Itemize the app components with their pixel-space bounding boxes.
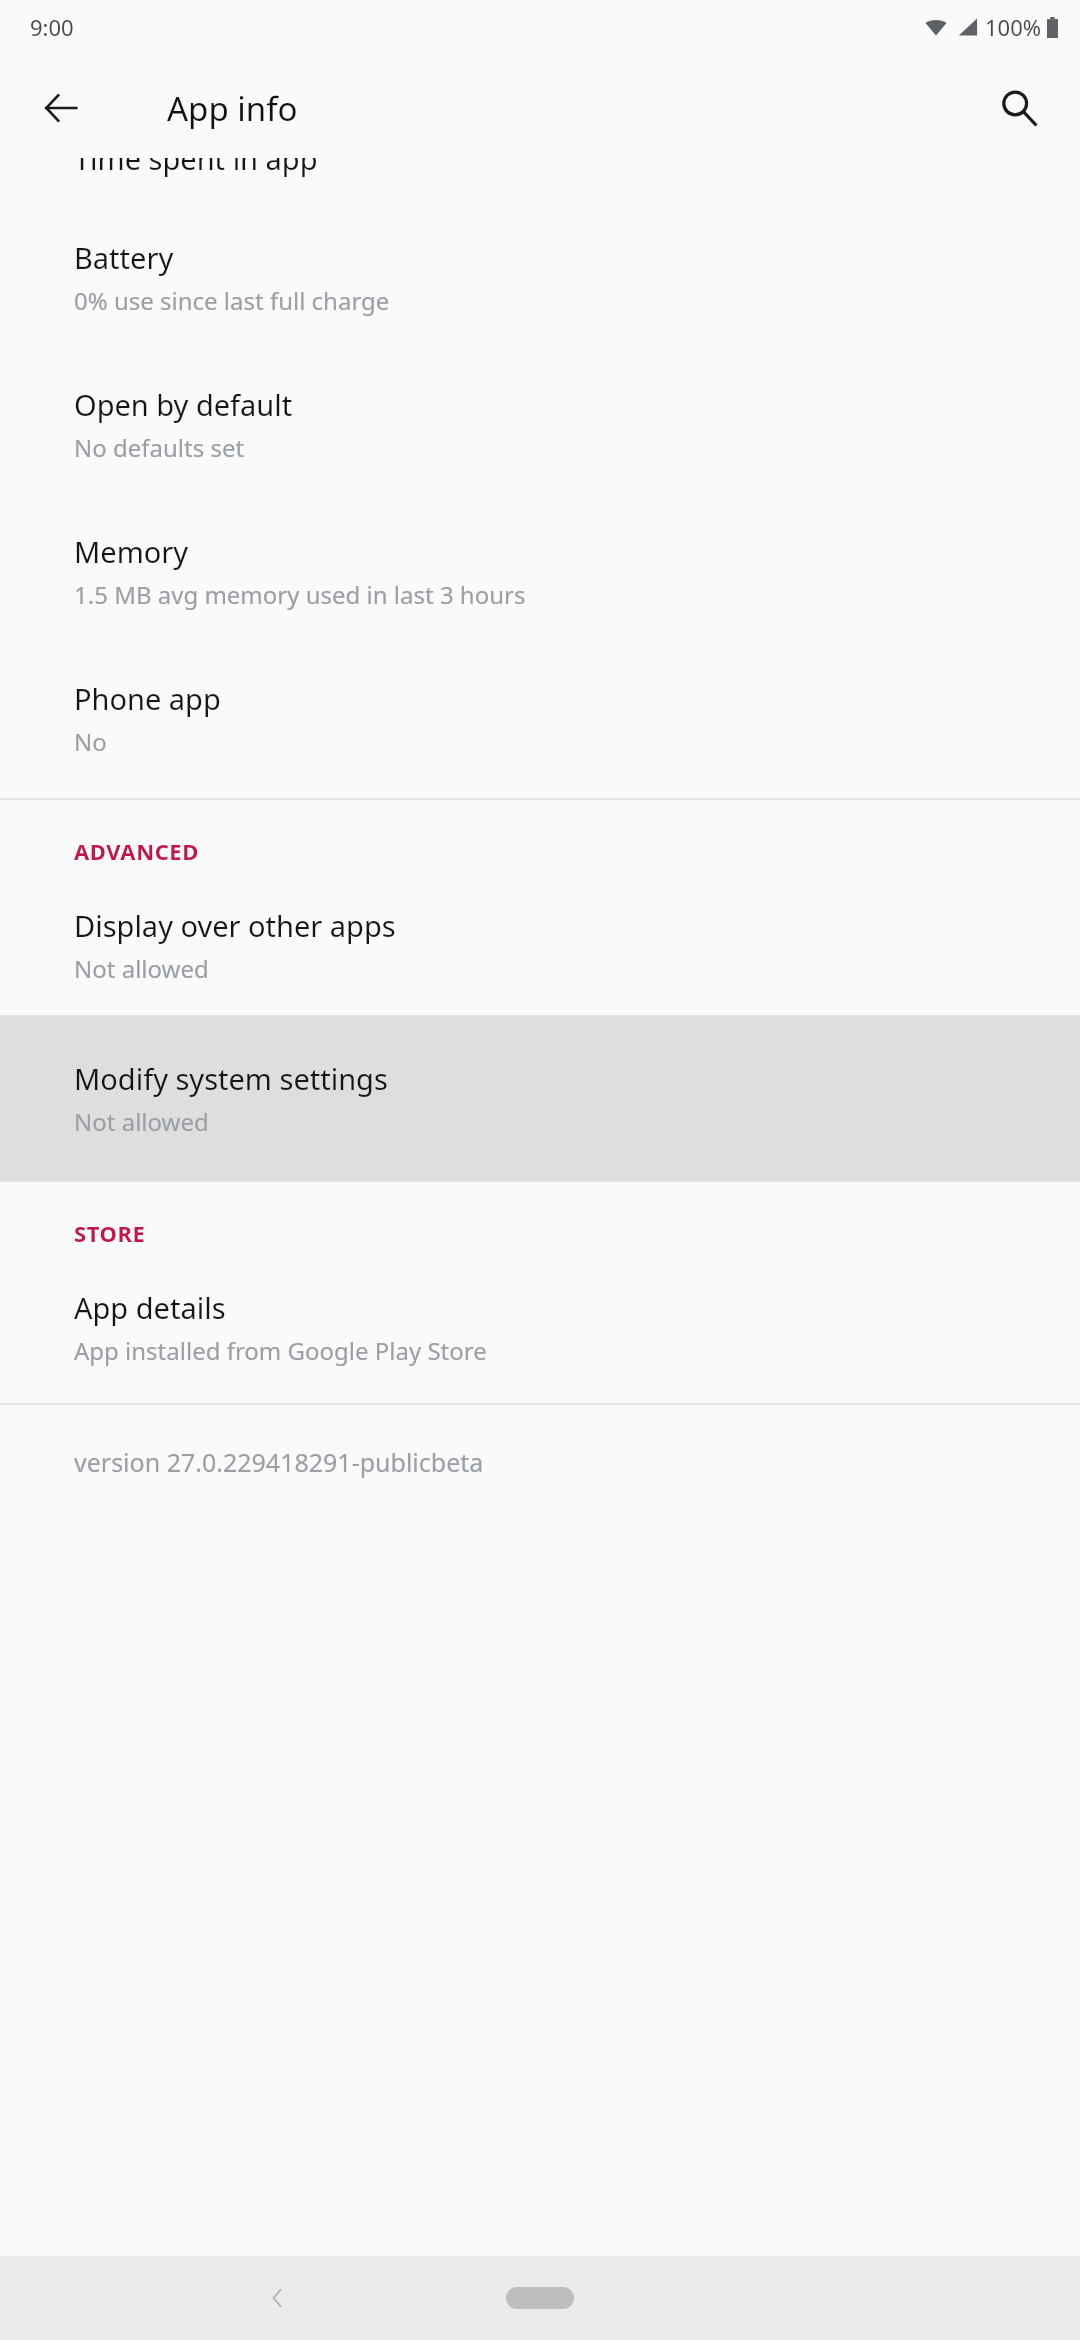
staticText: version 27.0.229418291-publicbeta <box>74 1445 484 1479</box>
staticText: App details <box>74 1288 226 1327</box>
staticText: Phone app <box>74 679 221 718</box>
button[interactable]: Back <box>25 72 97 144</box>
button[interactable]: Search <box>983 72 1055 144</box>
staticText: Display over other apps <box>74 906 396 945</box>
button[interactable]: Home <box>506 2287 574 2309</box>
button[interactable]: App details <box>0 1262 1080 1403</box>
staticText: STORE <box>74 1218 146 1248</box>
button[interactable]: Time spent in app <box>0 158 1080 204</box>
staticText: Not allowed <box>74 1105 209 1138</box>
staticText: No defaults set <box>74 431 245 464</box>
button[interactable]: Display over other apps <box>0 880 1080 1015</box>
staticText: 1.5 MB avg memory used in last 3 hours <box>74 578 526 611</box>
staticText: Open by default <box>74 385 293 424</box>
staticText: App installed from Google Play Store <box>74 1334 487 1367</box>
staticText: 9:00 <box>30 12 74 42</box>
button[interactable]: Phone app <box>0 645 1080 798</box>
staticText: Modify system settings <box>74 1059 388 1098</box>
button[interactable]: Open by default <box>0 351 1080 498</box>
staticText: Battery <box>74 238 174 277</box>
staticText: ADVANCED <box>74 836 199 866</box>
staticText: 100% <box>985 12 1042 42</box>
staticText: Not allowed <box>74 952 209 985</box>
button[interactable]: Modify system settings <box>0 1017 1080 1180</box>
button[interactable]: Back <box>240 2260 316 2336</box>
staticText: 0% use since last full charge <box>74 284 390 317</box>
staticText: Time spent in app <box>74 158 318 178</box>
staticText: App info <box>167 86 298 131</box>
staticText: No <box>74 725 107 758</box>
staticText: Memory <box>74 532 189 571</box>
button[interactable]: Battery <box>0 204 1080 351</box>
button[interactable]: Memory <box>0 498 1080 645</box>
